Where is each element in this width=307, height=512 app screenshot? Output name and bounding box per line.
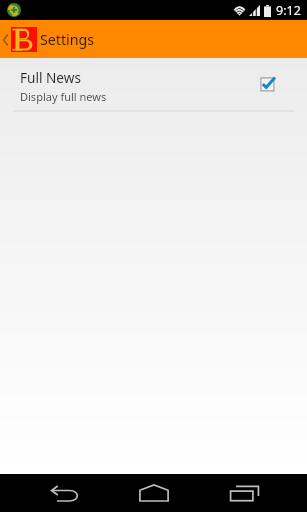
button[interactable]: Recent apps [199, 474, 307, 512]
button[interactable]: Navigate up [0, 27, 37, 52]
button[interactable]: Full News [0, 58, 307, 112]
staticText: Settings [40, 30, 94, 49]
staticText: Display full news [20, 89, 107, 104]
button[interactable]: Home [109, 474, 199, 512]
staticText: Full News [20, 68, 81, 87]
staticText: 9:12 [276, 2, 301, 19]
button[interactable]: Back [0, 474, 109, 512]
